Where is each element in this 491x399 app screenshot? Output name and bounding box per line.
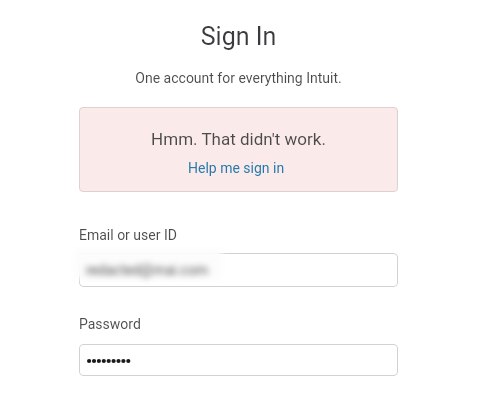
staticText: One account for everything Intuit. [79, 70, 398, 86]
staticText: Email or user ID [79, 227, 177, 243]
staticText: Password [79, 316, 141, 332]
button[interactable]: Help me sign in [183, 158, 290, 177]
button[interactable]: Password input [79, 344, 398, 376]
staticText: Sign In [79, 22, 398, 51]
staticText: Help me sign in [188, 160, 285, 176]
staticText: redacted@mai.com [86, 262, 208, 278]
button[interactable]: Email or user ID input [79, 253, 398, 287]
staticText: Hmm. That didn't work. [79, 129, 398, 149]
